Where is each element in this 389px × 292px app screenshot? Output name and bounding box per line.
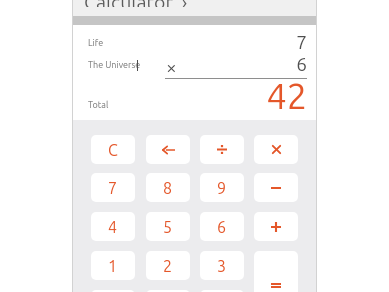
button[interactable]: Plus minus [200,290,244,292]
staticText: 2 [163,257,173,275]
staticText: 1 [108,257,118,275]
staticText: 9 [217,179,227,197]
staticText: Calculator › [84,0,188,7]
staticText: 4 [108,218,118,236]
staticText: 42 [236,75,307,115]
button[interactable]: 7 [91,173,135,202]
button[interactable]: 9 [200,173,244,202]
button[interactable]: 4 [91,212,135,241]
button[interactable]: Backspace [146,135,190,164]
button[interactable]: Calculator › [72,0,317,16]
staticText: 6 [217,218,227,236]
staticText: 7 [108,179,118,197]
button[interactable]: 5 [146,212,190,241]
button[interactable]: 3 [200,251,244,280]
staticText: 8 [163,179,173,197]
staticText: Life [88,38,104,48]
staticText: 7 [258,31,307,52]
button[interactable]: Equals [254,251,298,292]
staticText: × [166,56,177,77]
staticText: 5 [163,218,173,236]
button[interactable]: Multiply [254,135,298,164]
staticText: Total [88,100,109,110]
button[interactable]: 8 [146,173,190,202]
button[interactable]: 6 [200,212,244,241]
button[interactable]: Life [88,38,104,48]
staticText: 6 [258,53,307,74]
button[interactable]: Clear [91,135,135,164]
staticText: The Universe [88,60,141,70]
button[interactable]: Divide [200,135,244,164]
button[interactable]: Total [88,100,109,110]
button[interactable]: Minus [254,173,298,202]
button[interactable]: Plus [254,212,298,241]
button[interactable]: The Universe [88,60,141,70]
button[interactable]: Decimal point [146,290,190,292]
button[interactable]: 1 [91,251,135,280]
staticText: 3 [217,257,227,275]
button[interactable]: 0 [91,290,135,292]
button[interactable]: 2 [146,251,190,280]
staticText: C [108,141,118,159]
